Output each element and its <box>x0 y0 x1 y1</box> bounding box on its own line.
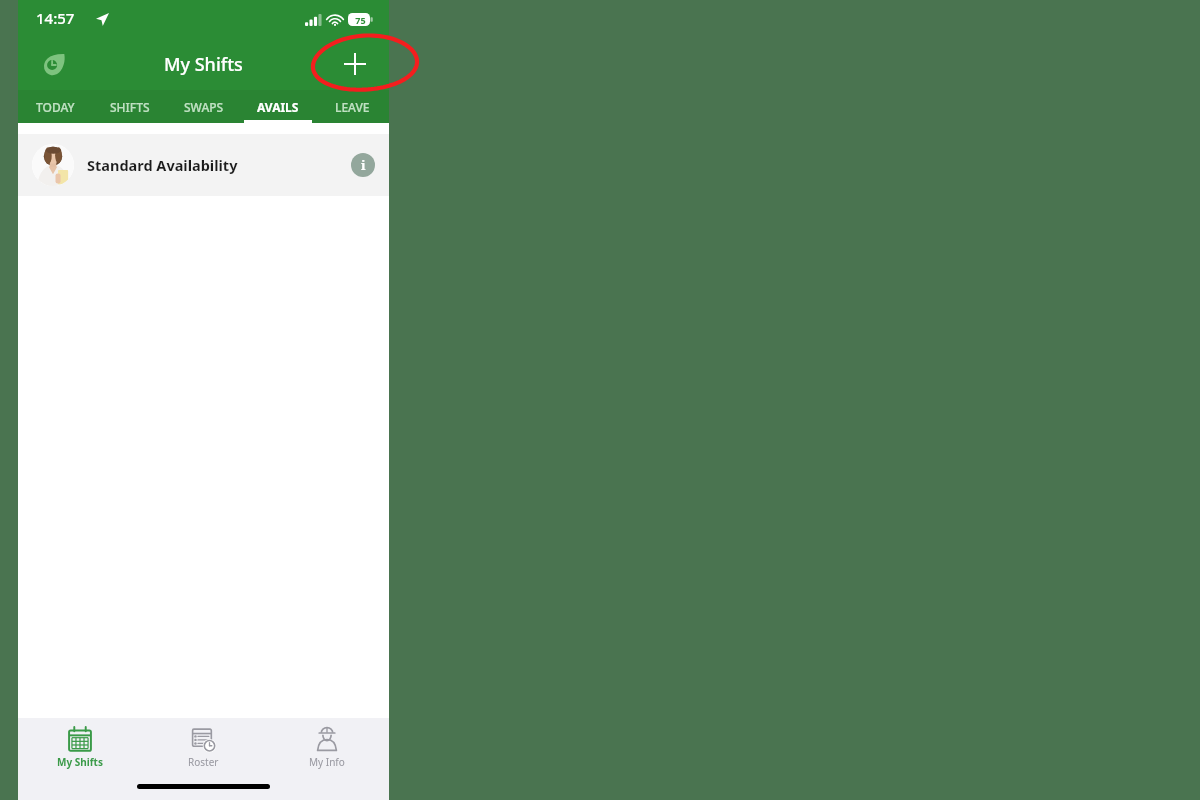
button[interactable]: Roster <box>141 718 265 776</box>
staticText: TODAY <box>36 99 75 115</box>
button[interactable]: SWAPS <box>167 90 241 123</box>
button[interactable]: LEAVE <box>315 90 389 123</box>
button[interactable]: App logo menu <box>36 47 70 81</box>
staticText: My Shifts <box>57 755 103 769</box>
staticText: AVAILS <box>257 99 299 115</box>
button[interactable]: SHIFTS <box>93 90 167 123</box>
button[interactable]: AVAILS <box>241 90 315 123</box>
staticText: My Shifts <box>164 52 243 77</box>
button[interactable]: TODAY <box>18 90 93 123</box>
staticText: 14:57 <box>36 8 75 28</box>
staticText: LEAVE <box>335 99 370 115</box>
staticText: i <box>361 156 366 174</box>
staticText: My Info <box>309 755 345 769</box>
button[interactable]: My Info <box>265 718 389 776</box>
staticText: Standard Availability <box>87 155 351 175</box>
button[interactable]: Information <box>351 153 375 177</box>
staticText: Roster <box>188 755 219 769</box>
button[interactable]: My Shifts <box>18 718 141 776</box>
button[interactable]: Standard Availability <box>18 134 389 196</box>
staticText: 75 <box>351 14 370 26</box>
staticText: SWAPS <box>184 99 224 115</box>
button[interactable]: Add availability <box>333 42 377 86</box>
staticText: SHIFTS <box>110 99 150 115</box>
